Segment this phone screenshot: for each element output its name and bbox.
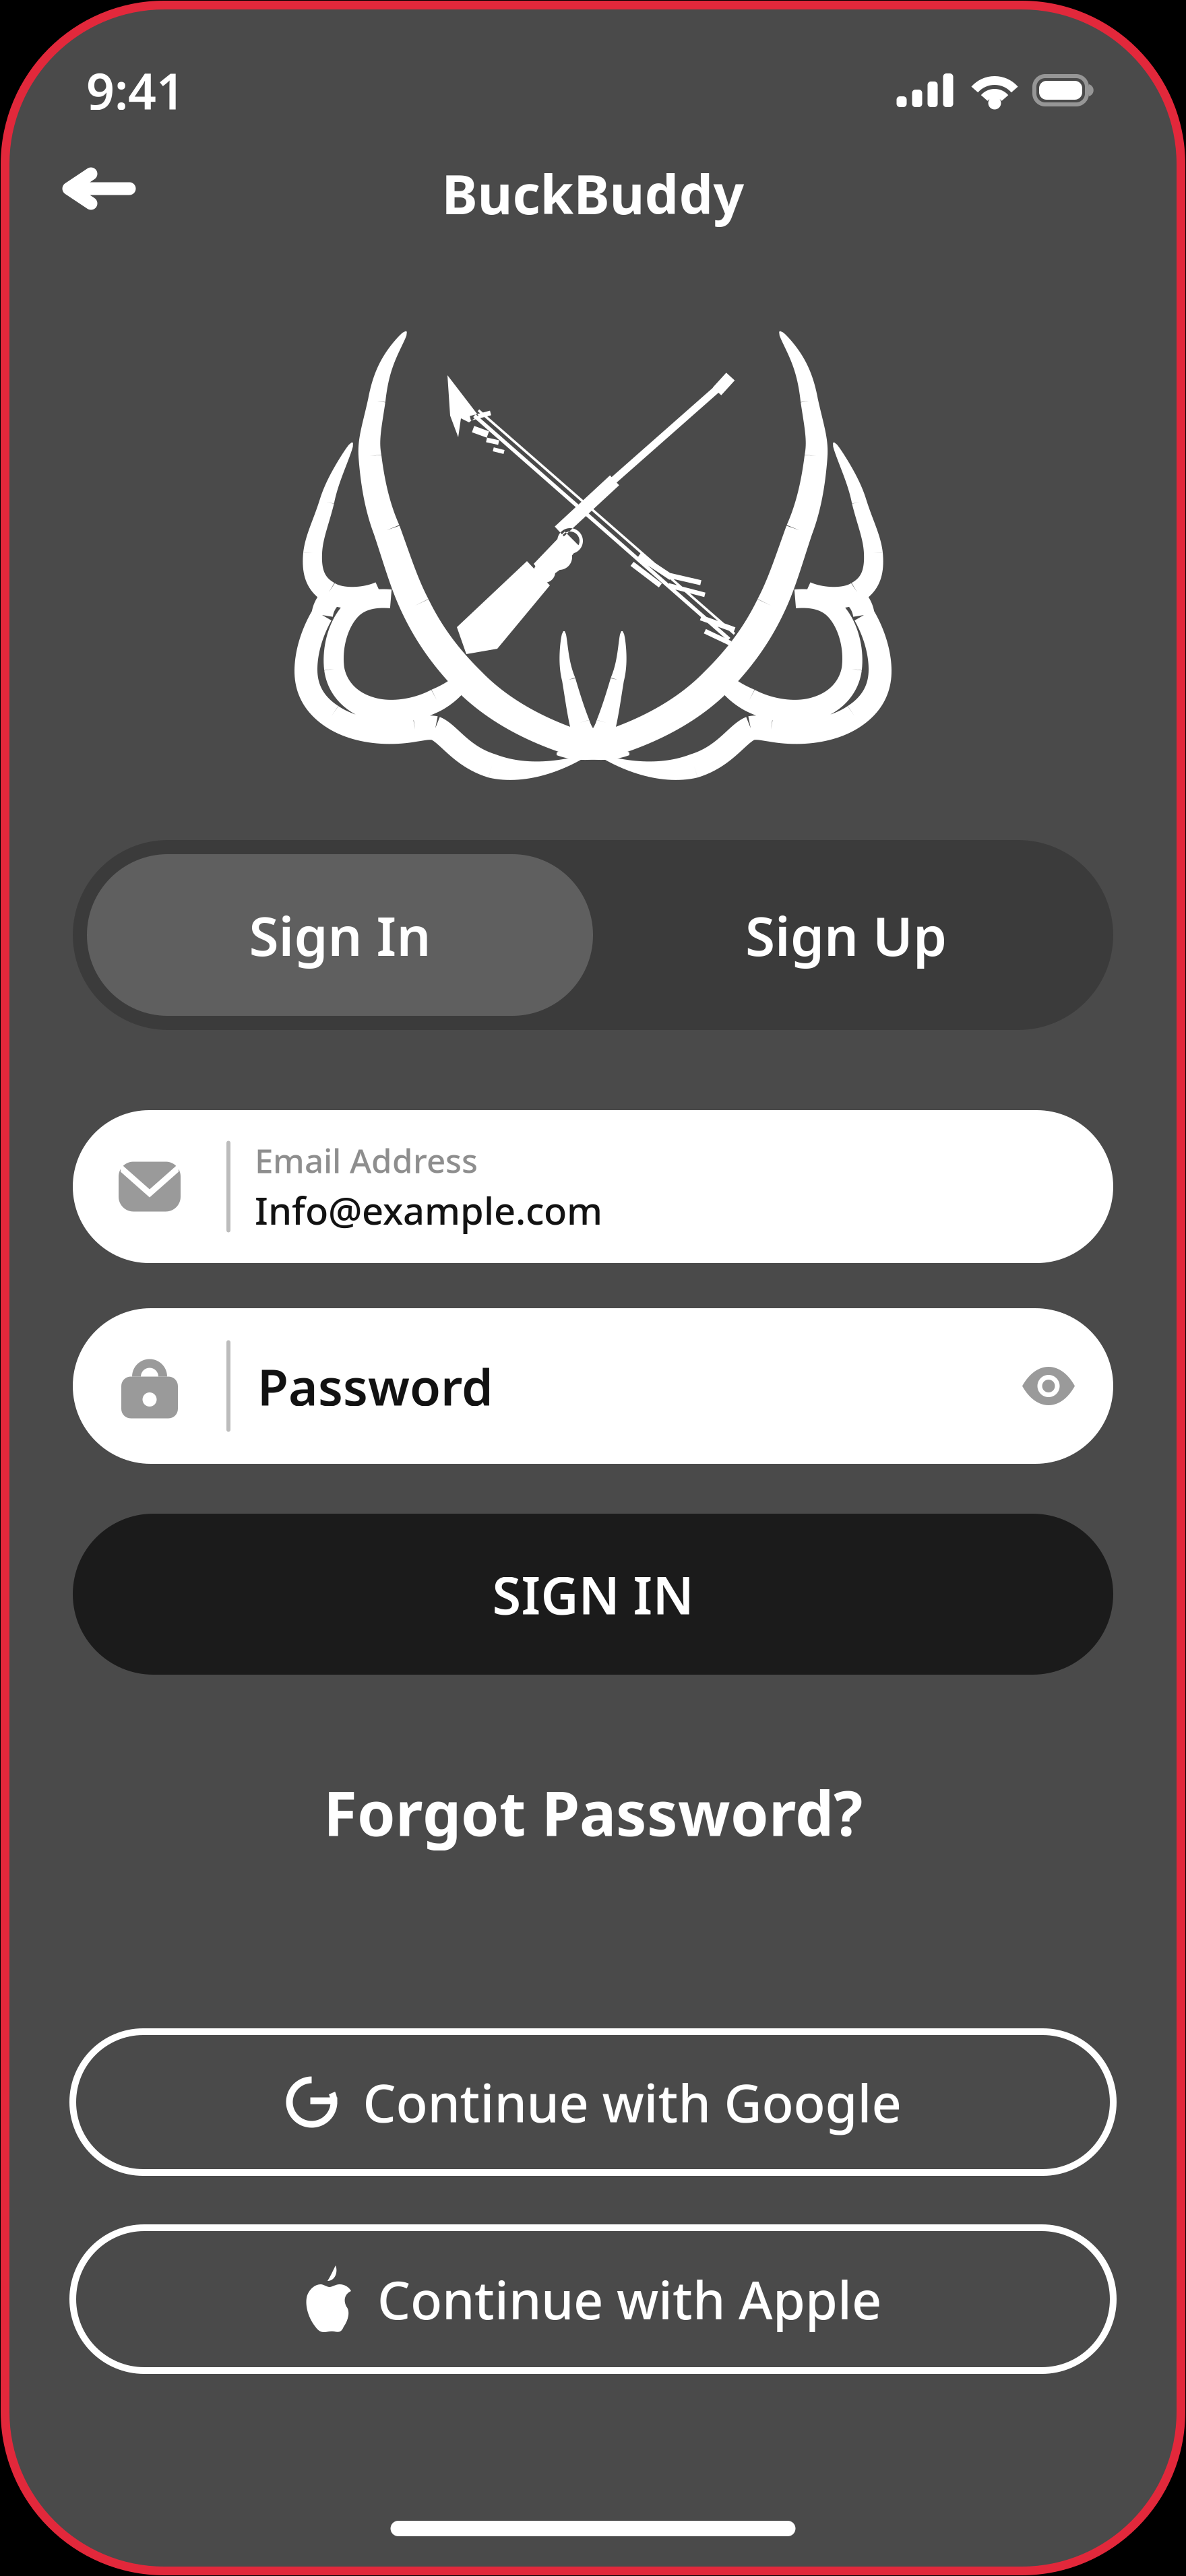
staticText: Forgot Password?: [323, 1772, 863, 1853]
staticText: Info@example.com: [255, 1185, 602, 1235]
button[interactable]: Continue with Apple: [73, 2228, 1113, 2371]
staticText: Sign In: [249, 899, 431, 971]
button[interactable]: Back: [9, 158, 164, 229]
staticText: Email Address: [255, 1138, 478, 1182]
button[interactable]: Forgot Password?: [296, 1756, 889, 1869]
staticText: Continue with Google: [363, 2068, 901, 2137]
staticText: BuckBuddy: [442, 158, 744, 229]
button[interactable]: Show password: [995, 1340, 1113, 1432]
button[interactable]: SIGN IN: [73, 1514, 1113, 1675]
staticText: SIGN IN: [492, 1560, 694, 1629]
staticText: Password: [257, 1353, 493, 1419]
staticText: Sign Up: [745, 899, 947, 971]
button[interactable]: Continue with Google: [73, 2032, 1113, 2172]
button[interactable]: Sign Up: [593, 854, 1099, 1016]
button[interactable]: Sign In: [87, 854, 593, 1016]
staticText: Continue with Apple: [377, 2265, 881, 2334]
staticText: 9:41: [86, 57, 185, 123]
